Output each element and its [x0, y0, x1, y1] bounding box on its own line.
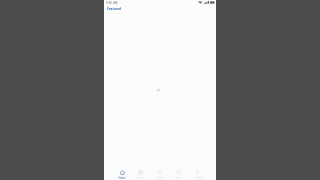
staticText: Home — [118, 176, 126, 179]
button[interactable]: Saved — [150, 168, 169, 180]
staticText: Featured — [107, 7, 122, 11]
staticText: Alerts — [175, 176, 182, 179]
button[interactable]: Profile — [188, 168, 207, 180]
staticText: Profile — [194, 176, 202, 179]
staticText: 9:36 AM — [106, 1, 118, 5]
staticText: Top picks today — [106, 12, 123, 15]
button[interactable]: Alerts — [169, 168, 188, 180]
staticText: Browse — [136, 176, 145, 179]
staticText: Saved — [156, 176, 164, 179]
button[interactable]: Browse — [131, 168, 150, 180]
button[interactable]: Home — [113, 168, 131, 180]
